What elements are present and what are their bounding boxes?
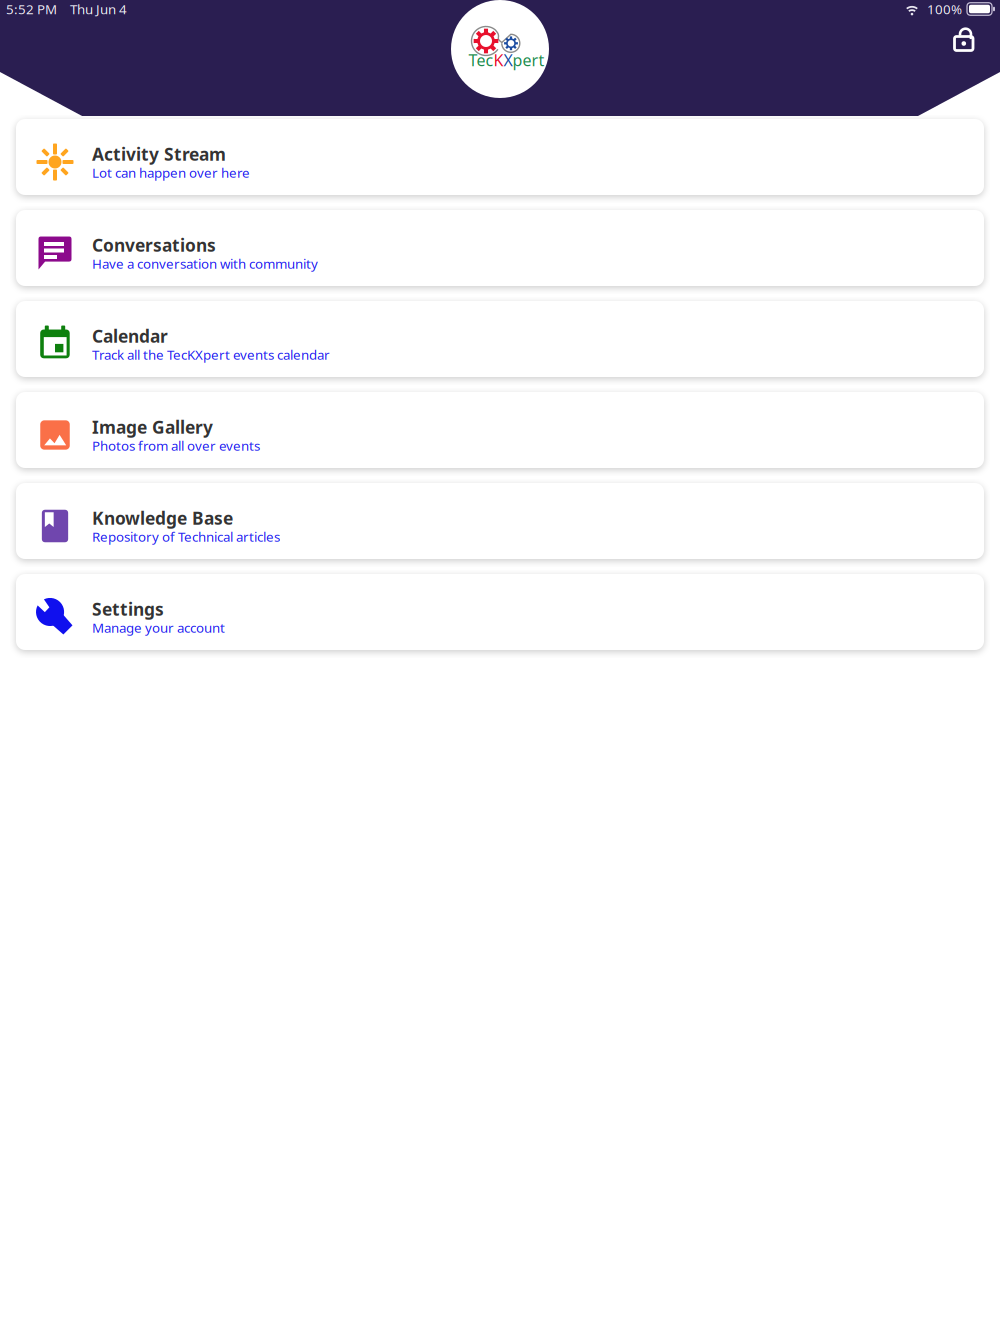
staticText: Calendar <box>92 325 168 348</box>
staticText: Thu Jun 4 <box>70 0 127 18</box>
staticText: K <box>493 49 503 71</box>
staticText: Activity Stream <box>92 143 226 166</box>
staticText: Image Gallery <box>92 416 213 439</box>
button[interactable]: Lock <box>945 21 983 57</box>
staticText: Knowledge Base <box>92 507 233 530</box>
staticText: Track all the TecKXpert events calendar <box>92 346 330 363</box>
button[interactable]: Activity Stream <box>16 119 984 195</box>
staticText: 5:52 PM <box>6 0 57 18</box>
staticText: Manage your account <box>92 619 225 636</box>
button[interactable]: Conversations <box>16 210 984 286</box>
staticText: Repository of Technical articles <box>92 528 280 545</box>
staticText: Lot can happen over here <box>92 164 250 181</box>
staticText: Photos from all over events <box>92 437 260 454</box>
staticText: pert <box>512 49 544 71</box>
button[interactable]: Knowledge Base <box>16 483 984 559</box>
staticText: Conversations <box>92 234 216 257</box>
staticText: Tec <box>468 49 493 71</box>
staticText: 100% <box>927 0 962 18</box>
button[interactable]: Settings <box>16 574 984 650</box>
staticText: Settings <box>92 598 164 621</box>
button[interactable]: Calendar <box>16 301 984 377</box>
staticText: X <box>503 49 512 71</box>
button[interactable]: Image Gallery <box>16 392 984 468</box>
staticText: Have a conversation with community <box>92 255 318 272</box>
